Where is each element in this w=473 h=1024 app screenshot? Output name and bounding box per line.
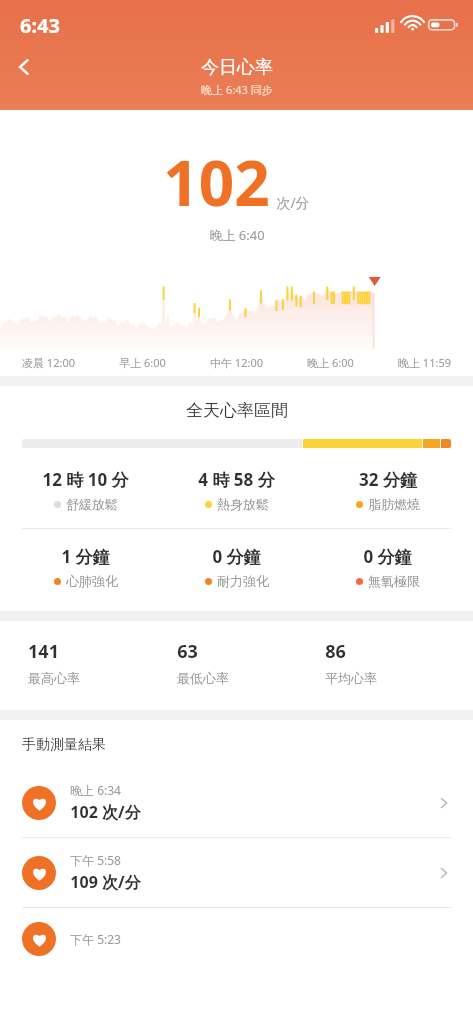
staticText: 熱身放鬆 — [217, 496, 269, 512]
button[interactable]: 下午 5:58 — [0, 838, 473, 907]
staticText: 109 次/分 — [70, 871, 141, 893]
staticText: 12 時 10 分 — [42, 468, 129, 491]
staticText: 141 — [28, 639, 59, 664]
staticText: 舒緩放鬆 — [66, 496, 118, 512]
staticText: 中午 12:00 — [210, 355, 263, 370]
staticText: 早上 6:00 — [119, 355, 166, 370]
staticText: 0 分鐘 — [212, 545, 261, 568]
staticText: 脂肪燃燒 — [368, 496, 420, 512]
staticText: 4 時 58 分 — [198, 468, 275, 491]
staticText: 102 — [163, 140, 270, 224]
staticText: 晚上 6:00 — [307, 355, 354, 370]
staticText: 凌晨 12:00 — [22, 355, 75, 370]
staticText: 86 — [325, 639, 346, 664]
staticText: 32 分鐘 — [359, 468, 417, 491]
staticText: 手動測量結果 — [22, 736, 106, 754]
staticText: 全天心率區間 — [186, 400, 288, 421]
button[interactable]: 晚上 6:34 — [0, 768, 473, 837]
staticText: 0 分鐘 — [363, 545, 412, 568]
staticText: 心肺強化 — [66, 573, 118, 589]
staticText: 今日心率 — [201, 56, 273, 79]
staticText: 63 — [177, 639, 198, 664]
button[interactable]: Back — [0, 43, 48, 91]
staticText: 6:43 — [20, 12, 60, 39]
staticText: 晚上 6:43 同步 — [201, 82, 273, 97]
staticText: 最高心率 — [28, 670, 80, 686]
staticText: 耐力強化 — [217, 573, 269, 589]
staticText: 1 分鐘 — [61, 545, 110, 568]
staticText: 平均心率 — [325, 670, 377, 686]
staticText: 102 次/分 — [70, 801, 141, 823]
staticText: 下午 5:23 — [70, 931, 121, 947]
staticText: 無氧極限 — [368, 573, 420, 589]
staticText: 下午 5:58 — [70, 852, 121, 868]
staticText: 次/分 — [276, 193, 310, 212]
staticText: 晚上 6:40 — [209, 226, 265, 244]
staticText: 最低心率 — [177, 670, 229, 686]
staticText: 晚上 6:34 — [70, 782, 121, 798]
staticText: 晚上 11:59 — [398, 355, 451, 370]
button[interactable]: 下午 5:23 — [0, 908, 473, 970]
